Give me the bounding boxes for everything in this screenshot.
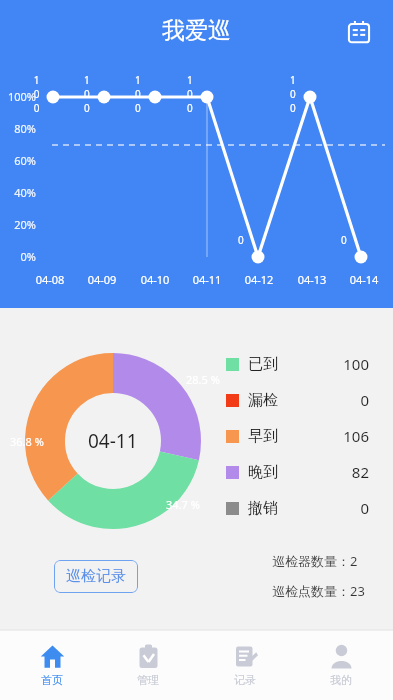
staticText: 晚到 xyxy=(248,463,278,482)
button[interactable]: 撤销 xyxy=(226,490,369,526)
staticText: 04-09 xyxy=(80,272,124,287)
staticText: 巡检记录 xyxy=(66,567,126,586)
button[interactable]: 管理 xyxy=(103,630,193,700)
staticText: 04-12 xyxy=(237,272,281,287)
button[interactable]: 首页 xyxy=(7,630,97,700)
staticText: 40% xyxy=(0,185,36,200)
staticText: 04-11 xyxy=(185,272,229,287)
staticText: 04-11 xyxy=(88,428,138,454)
button[interactable]: 早到 xyxy=(226,418,369,454)
staticText: 撤销 xyxy=(248,499,278,518)
staticText: 巡检点数量：23 xyxy=(272,582,365,600)
staticText: 28.5 % xyxy=(186,372,220,387)
staticText: 82 xyxy=(327,462,369,482)
staticText: 0% xyxy=(0,249,36,264)
button[interactable]: 漏检 xyxy=(226,382,369,418)
staticText: 20% xyxy=(0,217,36,232)
staticText: 巡检器数量：2 xyxy=(272,552,358,570)
staticText: 100% xyxy=(0,89,36,104)
staticText: 我的 xyxy=(330,673,352,687)
staticText: 记录 xyxy=(234,673,256,687)
button[interactable]: 已到 xyxy=(226,346,369,382)
staticText: 管理 xyxy=(137,673,159,687)
staticText: 04-14 xyxy=(342,272,386,287)
staticText: 100 xyxy=(33,73,40,115)
staticText: 首页 xyxy=(41,673,63,687)
staticText: 36.8 % xyxy=(10,434,44,449)
button[interactable]: Calendar xyxy=(341,14,377,50)
button[interactable]: 记录 xyxy=(200,630,290,700)
button[interactable]: 巡检记录 xyxy=(54,560,138,593)
staticText: 已到 xyxy=(248,355,278,374)
staticText: 106 xyxy=(327,426,369,446)
staticText: 60% xyxy=(0,153,36,168)
staticText: 0 xyxy=(327,498,369,518)
staticText: 04-08 xyxy=(28,272,72,287)
staticText: 80% xyxy=(0,121,36,136)
staticText: 34.7 % xyxy=(166,497,200,512)
button[interactable]: 晚到 xyxy=(226,454,369,490)
staticText: 04-10 xyxy=(133,272,177,287)
staticText: 100 xyxy=(327,354,369,374)
staticText: 0 xyxy=(327,390,369,410)
staticText: 我爱巡 xyxy=(162,16,231,45)
staticText: 漏检 xyxy=(248,391,278,410)
staticText: 早到 xyxy=(248,427,278,446)
staticText: 04-13 xyxy=(290,272,334,287)
button[interactable]: 我的 xyxy=(296,630,386,700)
